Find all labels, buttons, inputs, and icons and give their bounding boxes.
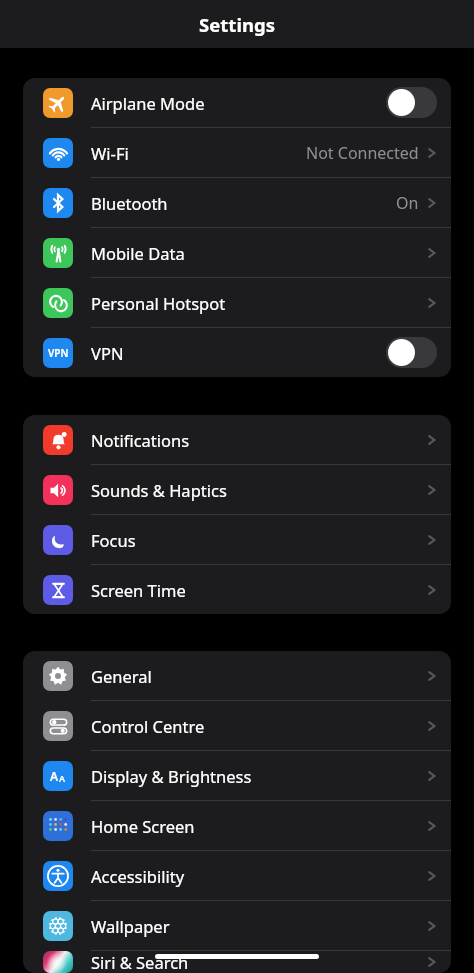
staticText: Focus xyxy=(91,529,136,551)
staticText: Airplane Mode xyxy=(91,92,205,114)
staticText: Accessibility xyxy=(91,865,185,887)
staticText: Wallpaper xyxy=(91,915,170,937)
button[interactable]: Bluetooth xyxy=(23,178,451,228)
staticText: VPN xyxy=(91,342,124,364)
staticText: Home Screen xyxy=(91,815,195,837)
button[interactable]: Toggle xyxy=(386,337,437,368)
staticText: A xyxy=(59,772,66,784)
button[interactable]: Personal Hotspot xyxy=(23,278,451,328)
staticText: A xyxy=(50,768,59,784)
button[interactable]: Home Screen xyxy=(23,801,451,851)
button[interactable]: A xyxy=(23,751,451,801)
button[interactable]: Accessibility xyxy=(23,851,451,901)
staticText: VPN xyxy=(48,346,69,360)
staticText: Screen Time xyxy=(91,579,186,601)
staticText: Personal Hotspot xyxy=(91,292,226,314)
button[interactable]: Toggle xyxy=(386,87,437,118)
button[interactable]: Wi-Fi xyxy=(23,128,451,178)
staticText: Sounds & Haptics xyxy=(91,479,227,501)
staticText: Mobile Data xyxy=(91,242,185,264)
staticText: Bluetooth xyxy=(91,192,168,214)
button[interactable]: VPN xyxy=(23,328,451,377)
button[interactable]: Control Centre xyxy=(23,701,451,751)
staticText: Wi-Fi xyxy=(91,142,129,164)
button[interactable]: Screen Time xyxy=(23,565,451,614)
button[interactable]: General xyxy=(23,651,451,701)
button[interactable]: Sounds & Haptics xyxy=(23,465,451,515)
button[interactable]: Focus xyxy=(23,515,451,565)
staticText: Display & Brightness xyxy=(91,765,252,787)
staticText: General xyxy=(91,665,152,687)
button[interactable]: Mobile Data xyxy=(23,228,451,278)
staticText: Settings xyxy=(199,12,275,37)
button[interactable]: Wallpaper xyxy=(23,901,451,951)
button[interactable]: Notifications xyxy=(23,415,451,465)
staticText: Control Centre xyxy=(91,715,205,737)
button[interactable]: Airplane Mode xyxy=(23,78,451,128)
button[interactable]: Siri & Search xyxy=(23,951,451,973)
staticText: Not Connected xyxy=(306,142,419,164)
staticText: Siri & Search xyxy=(91,951,189,973)
staticText: Notifications xyxy=(91,429,190,451)
staticText: On xyxy=(396,192,419,214)
